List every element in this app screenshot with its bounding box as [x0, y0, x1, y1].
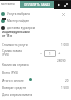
button[interactable]: Мастер найден — [1, 18, 71, 23]
button[interactable]: – — [40, 50, 42, 55]
staticText: 1 000 — [61, 43, 69, 47]
staticText: Возврат средств — [2, 86, 26, 90]
button[interactable]: ОПЛАТИТЬ ЗАКАЗ — [20, 1, 54, 8]
button[interactable]: Close — [60, 11, 66, 17]
staticText: Всего (РУБ) — [2, 71, 19, 75]
button[interactable]: Play — [56, 2, 62, 8]
button[interactable]: Услуга выбрана — [1, 11, 71, 16]
button[interactable]: доставка курьером — [1, 25, 71, 30]
staticText: 1 — [49, 52, 51, 56]
staticText: 20 — [65, 79, 69, 83]
staticText: Дата и время визита — [2, 93, 33, 97]
button[interactable]: Fullscreen — [63, 2, 69, 8]
staticText: Сумма заказа (РУБ) — [2, 49, 22, 57]
staticText: ОПЛАТИТЬ ЗАКАЗ — [24, 3, 51, 7]
staticText: Комиссия сервиса — [2, 63, 29, 67]
staticText: 28090 — [57, 59, 66, 63]
staticText: 1 500 — [61, 86, 69, 90]
staticText: индивидуальным от 15 к — [2, 30, 30, 38]
staticText: доставка курьером — [7, 26, 35, 30]
staticText: Итого к оплате — [2, 79, 24, 83]
staticText: Стоимость услуги — [2, 43, 28, 47]
staticText: Мастер найден — [7, 19, 30, 23]
staticText: контакты — [1, 2, 15, 6]
staticText: Услуга выбрана — [7, 12, 30, 16]
button[interactable]: + — [58, 50, 61, 55]
